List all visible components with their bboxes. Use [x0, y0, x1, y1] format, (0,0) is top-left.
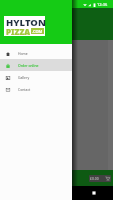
button[interactable]: £0.00: [89, 175, 111, 182]
button[interactable]: Recent apps: [75, 186, 113, 200]
staticText: 12:36: [97, 2, 108, 7]
staticText: PIZZA: [6, 26, 31, 37]
staticText: Order online: [18, 63, 39, 68]
staticText: .COM: [32, 29, 43, 34]
button[interactable]: Home: [37, 186, 75, 200]
button[interactable]: Gallery: [0, 71, 72, 83]
button[interactable]: Contact: [0, 83, 72, 95]
staticText: £0.00: [90, 176, 99, 181]
button[interactable]: Home: [0, 47, 72, 59]
button[interactable]: Order online: [0, 59, 72, 71]
staticText: HYLTON: [6, 16, 46, 29]
staticText: Home: [18, 51, 28, 56]
staticText: Contact: [18, 87, 31, 92]
staticText: Gallery: [18, 75, 30, 80]
